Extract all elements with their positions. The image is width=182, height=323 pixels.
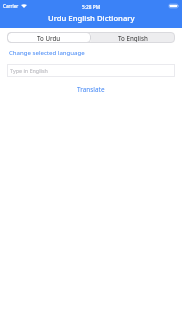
staticText: Translate xyxy=(77,85,105,94)
staticText: To Urdu xyxy=(37,34,61,42)
button[interactable]: Change selected language xyxy=(9,48,85,56)
staticText: To English xyxy=(118,34,148,42)
button[interactable]: Type in English xyxy=(7,64,175,77)
button[interactable]: Translate xyxy=(77,85,105,94)
button[interactable]: To English xyxy=(91,32,175,43)
staticText: Type in English xyxy=(10,67,48,74)
other: Wi-Fi signal xyxy=(21,4,27,8)
staticText: Urdu English Dictionary xyxy=(48,13,135,23)
other: Battery full xyxy=(169,4,179,8)
staticText: 5:28 PM xyxy=(82,4,101,11)
staticText: Change selected language xyxy=(9,48,85,56)
staticText: Carrier xyxy=(3,3,19,9)
button[interactable]: To Urdu xyxy=(7,32,91,43)
